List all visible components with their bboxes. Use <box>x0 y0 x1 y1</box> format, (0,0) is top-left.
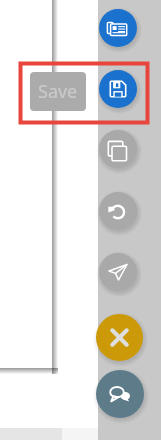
button[interactable]: Reader mode <box>99 9 137 47</box>
button[interactable]: Save <box>99 70 137 108</box>
button[interactable]: Chat <box>96 370 144 418</box>
button[interactable]: Save <box>30 72 86 111</box>
button[interactable]: Close <box>96 314 143 361</box>
button[interactable]: Send <box>99 253 137 291</box>
button[interactable]: Undo <box>99 192 137 230</box>
staticText: Save <box>38 79 78 104</box>
button[interactable]: Copy <box>99 130 137 168</box>
